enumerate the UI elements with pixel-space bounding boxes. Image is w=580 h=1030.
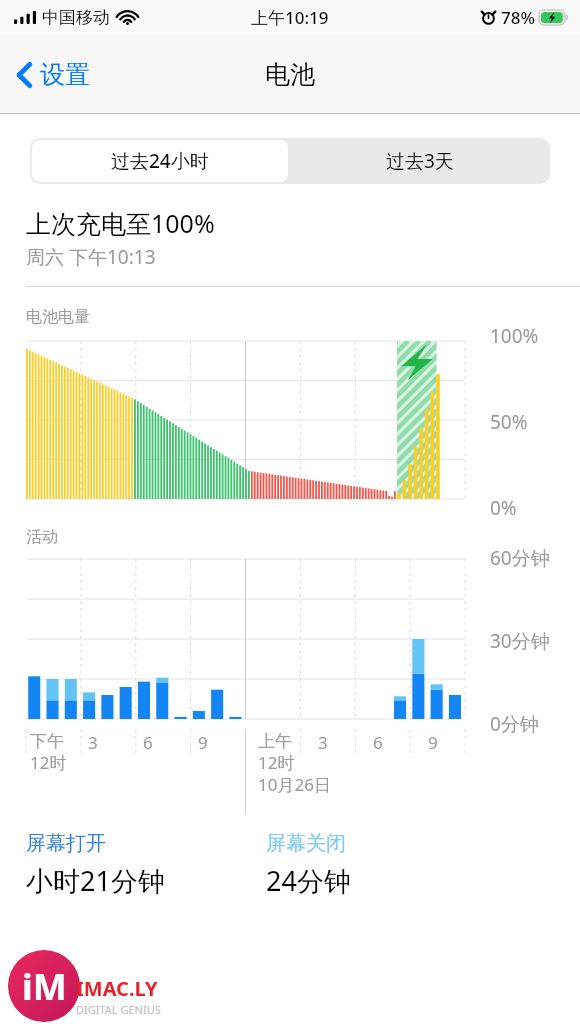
button[interactable]: 屏幕打开 (26, 831, 266, 899)
staticText: 周六 下午10:13 (26, 244, 156, 270)
staticText: 屏幕打开 (26, 831, 106, 856)
staticText: 活动 (26, 527, 58, 547)
staticText: 0% (490, 495, 517, 521)
staticText: 过去24小时 (111, 148, 209, 174)
staticText: 上午10:19 (251, 6, 329, 29)
staticText: 9 (428, 731, 438, 754)
staticText: DIGITAL GENIUS (76, 1002, 161, 1017)
staticText: 上次充电至100% (26, 206, 215, 240)
staticText: 6 (373, 731, 383, 754)
staticText: 100% (490, 323, 539, 349)
staticText: 设置 (40, 59, 90, 90)
staticText: 中国移动 (42, 7, 110, 28)
staticText: 下午 12时 (30, 731, 67, 775)
staticText: 6 (143, 731, 153, 754)
button[interactable]: 返回设置 (12, 53, 94, 96)
button[interactable]: 过去24小时 (32, 140, 288, 182)
staticText: 3 (318, 731, 328, 754)
staticText: 30分钟 (490, 628, 550, 654)
staticText: 过去3天 (386, 148, 454, 174)
staticText: 上午 12时 10月26日 (258, 731, 331, 797)
button[interactable]: 过去3天 (290, 138, 550, 184)
staticText: 0分钟 (490, 711, 539, 737)
staticText: 9 (198, 731, 208, 754)
button[interactable]: 屏幕关闭 (266, 831, 351, 899)
staticText: 50% (490, 409, 528, 435)
staticText: 小时21分钟 (26, 862, 165, 899)
other: 返回设置 (16, 61, 32, 89)
staticText: 78% (501, 6, 535, 29)
staticText: 电池 (265, 59, 315, 90)
staticText: 3 (88, 731, 98, 754)
staticText: IMAC.LY (76, 975, 158, 1002)
staticText: 屏幕关闭 (266, 831, 346, 856)
staticText: iM (22, 962, 67, 1011)
staticText: 电池电量 (26, 307, 90, 327)
staticText: 60分钟 (490, 545, 550, 571)
staticText: 24分钟 (266, 862, 351, 899)
